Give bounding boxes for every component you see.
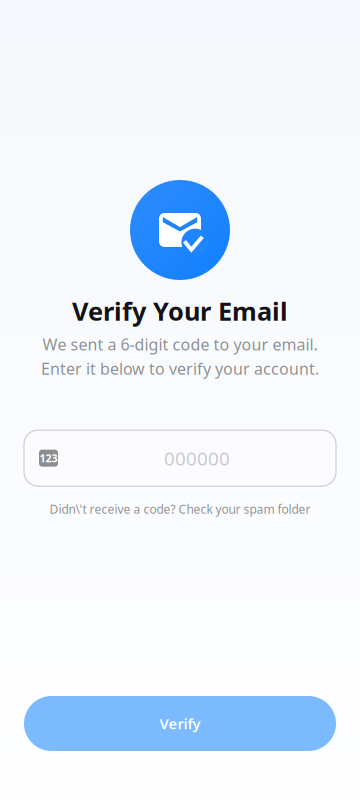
staticText: Verify Your Email [72,294,288,328]
staticText: 123 [39,451,57,465]
staticText: Didn\'t receive a code? Check your spam … [49,501,310,517]
staticText: We sent a 6-digit code to your email. [42,334,317,355]
button[interactable]: Verify [24,696,336,751]
staticText: Verify [159,714,200,733]
staticText: 000000 [164,446,230,470]
staticText: Enter it below to verify your account. [41,358,319,379]
